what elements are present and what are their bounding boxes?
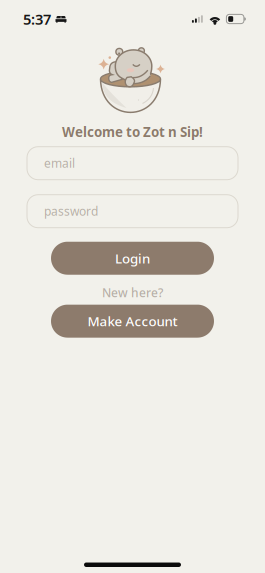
staticText: 5:37	[23, 9, 51, 29]
button[interactable]: password	[27, 195, 238, 228]
button[interactable]: Login	[51, 242, 214, 275]
staticText: Welcome to Zot n Sip!	[62, 123, 203, 141]
staticText: Make Account	[87, 312, 177, 330]
staticText: email	[44, 155, 75, 171]
staticText: New here?	[102, 285, 163, 301]
staticText: password	[44, 203, 98, 219]
staticText: Login	[115, 249, 150, 267]
button[interactable]: Make Account	[51, 305, 214, 338]
button[interactable]: email	[27, 147, 238, 180]
